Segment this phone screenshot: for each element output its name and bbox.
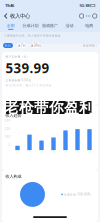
staticText: 100 (4, 135, 10, 139)
staticText: 老枪带你盈利 (4, 98, 94, 116)
staticText: 0 (8, 143, 10, 147)
staticText: 近30日 (31, 44, 41, 47)
staticText: 账户总余额（元） (5, 55, 29, 58)
button[interactable]: Back (3, 13, 10, 19)
staticText: 游戏推广 (42, 23, 58, 28)
staticText: 收入构成 (5, 174, 21, 179)
staticText: 收入趋势 (5, 113, 21, 118)
staticText: 200 (4, 127, 10, 131)
button[interactable]: 电商 (79, 23, 99, 30)
button[interactable]: Account (93, 14, 97, 18)
staticText: 已提现金额 0.00元 (5, 78, 31, 82)
staticText: 每日2时结算，预计2个工作日到账 (5, 83, 51, 87)
staticText: 全部 (7, 23, 15, 28)
staticText: 5G (79, 3, 84, 8)
staticText: 三重激励百元奖，新人最高可得现金奖励金 (4, 34, 61, 37)
button[interactable]: 收益明细 › (83, 44, 97, 47)
staticText: 电商 (85, 23, 93, 28)
staticText: 分成计划 100.00% (64, 193, 90, 196)
staticText: 分成计划 (22, 23, 38, 28)
staticText: 539.99 (5, 59, 49, 77)
button[interactable]: 近30日 (31, 43, 41, 48)
staticText: 19:46 (5, 3, 14, 8)
button[interactable]: 活动 (60, 23, 79, 30)
button[interactable]: 近7日 (17, 43, 27, 48)
staticText: 收益明细 › (83, 44, 97, 47)
button[interactable]: 分成计划 (21, 23, 40, 30)
staticText: 收入中心 (10, 13, 30, 19)
button[interactable]: Customer service (79, 14, 84, 18)
staticText: 88 (85, 3, 89, 8)
staticText: 活动 (66, 23, 74, 28)
staticText: 近7日 (18, 44, 26, 47)
button[interactable]: More (84, 14, 93, 18)
button[interactable]: 全部 (1, 23, 21, 30)
button[interactable]: 昨日 (3, 43, 13, 48)
staticText: 昨日 (5, 44, 11, 47)
staticText: 300 (4, 119, 10, 122)
button[interactable]: 游戏推广 (40, 23, 60, 30)
